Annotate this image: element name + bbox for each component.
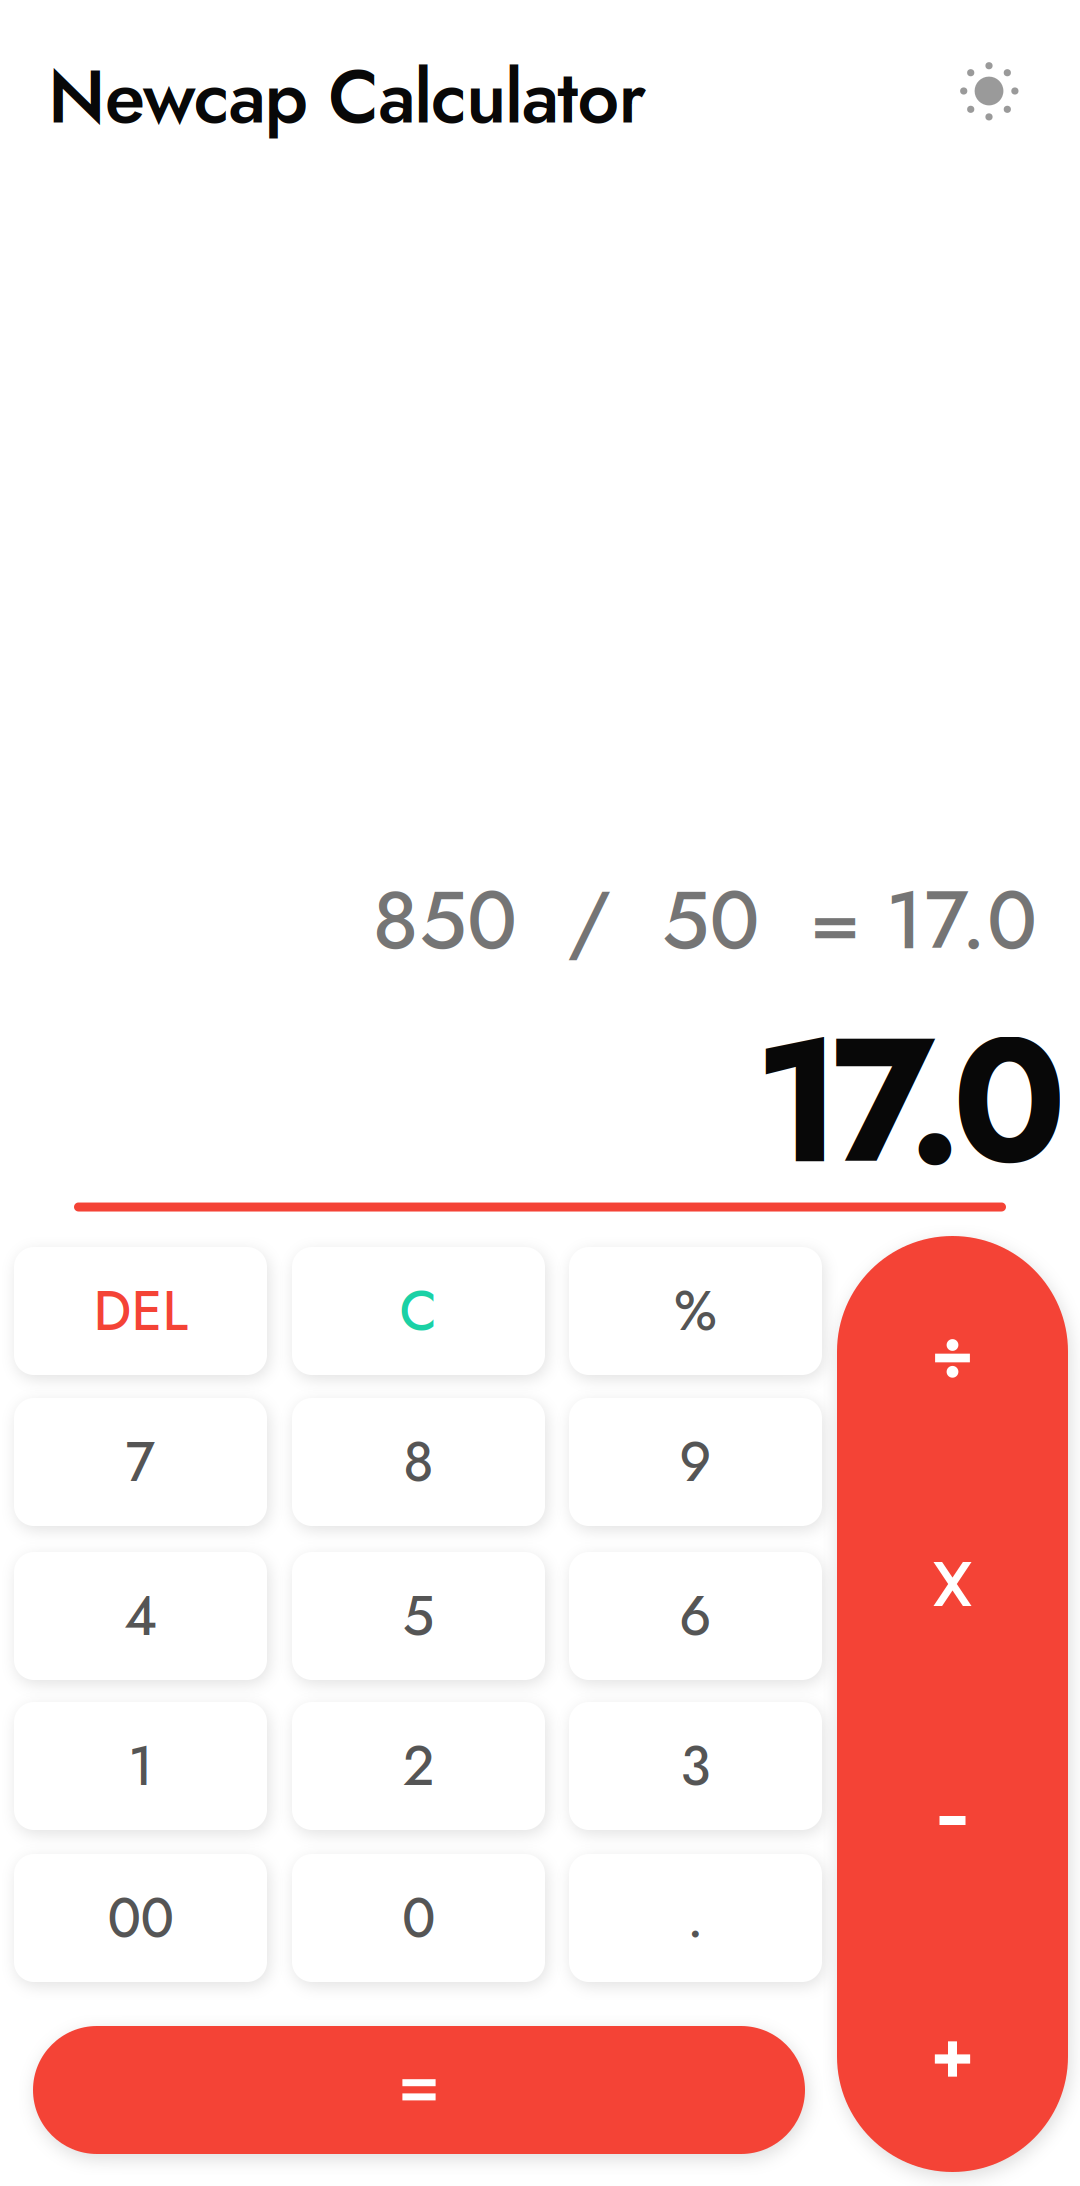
button[interactable]: C	[292, 1247, 545, 1375]
button[interactable]: %	[569, 1247, 822, 1375]
button[interactable]: 4	[14, 1552, 267, 1680]
button[interactable]: Toggle appearance	[957, 59, 1021, 123]
staticText: 850 / 50 = 17.0	[372, 861, 1037, 979]
staticText: 2	[402, 1726, 434, 1805]
staticText: .	[687, 1878, 704, 1957]
staticText: 6	[679, 1576, 712, 1655]
staticText: 3	[680, 1726, 711, 1805]
button[interactable]: 5	[292, 1552, 545, 1680]
button[interactable]: 9	[569, 1398, 822, 1526]
button[interactable]: 8	[292, 1398, 545, 1526]
button[interactable]: Multiply	[837, 1470, 1068, 1704]
staticText: 9	[679, 1422, 712, 1501]
staticText: DEL	[93, 1271, 187, 1350]
staticText: 0	[402, 1878, 435, 1957]
button[interactable]: Subtract	[837, 1704, 1068, 1938]
button[interactable]: DEL	[14, 1247, 267, 1375]
staticText: 17.0	[754, 976, 1067, 1226]
button[interactable]: Equals	[33, 2026, 805, 2154]
staticText: 5	[402, 1576, 434, 1655]
staticText: 7	[125, 1422, 155, 1501]
button[interactable]: 7	[14, 1398, 267, 1526]
staticText: 1	[128, 1726, 153, 1805]
staticText: 00	[107, 1878, 173, 1957]
staticText: C	[399, 1271, 437, 1350]
button[interactable]: 00	[14, 1854, 267, 1982]
button[interactable]: 0	[292, 1854, 545, 1982]
staticText: %	[674, 1271, 717, 1350]
button[interactable]: 1	[14, 1702, 267, 1830]
button[interactable]: .	[569, 1854, 822, 1982]
staticText: Newcap Calculator	[48, 44, 646, 150]
button[interactable]: Add	[837, 1938, 1068, 2172]
button[interactable]: Divide	[837, 1236, 1068, 1470]
button[interactable]: 2	[292, 1702, 545, 1830]
button[interactable]: 6	[569, 1552, 822, 1680]
staticText: 8	[403, 1422, 434, 1501]
staticText: 4	[124, 1576, 157, 1655]
button[interactable]: 3	[569, 1702, 822, 1830]
